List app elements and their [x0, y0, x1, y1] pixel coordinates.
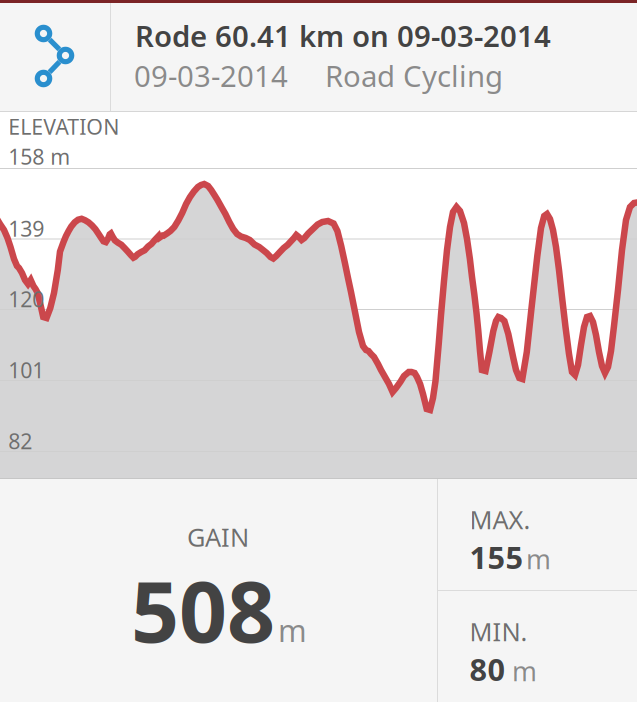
staticText: 120	[8, 285, 44, 313]
staticText: 101	[8, 356, 44, 384]
staticText: Rode 60.41 km on 09-03-2014	[135, 16, 551, 55]
staticText: 139	[8, 214, 44, 243]
staticText: 80	[469, 649, 505, 689]
button[interactable]: MIN.	[438, 591, 637, 702]
button[interactable]: Rode 60.41 km on 09-03-2014	[0, 3, 637, 111]
staticText: m	[526, 541, 551, 577]
staticText: Road Cycling	[325, 56, 503, 95]
button[interactable]: GAIN	[0, 479, 437, 702]
staticText: 508	[131, 554, 275, 666]
staticText: MAX.	[469, 503, 530, 536]
staticText: ELEVATION	[8, 112, 119, 141]
staticText: 158 m	[8, 142, 70, 171]
staticText: 82	[8, 427, 32, 455]
staticText: GAIN	[187, 520, 249, 554]
staticText: m	[512, 653, 537, 689]
button[interactable]: MAX.	[438, 479, 637, 590]
staticText: 155	[469, 537, 523, 577]
staticText: 09-03-2014	[134, 56, 288, 95]
staticText: m	[278, 610, 307, 650]
staticText: MIN.	[469, 615, 527, 648]
